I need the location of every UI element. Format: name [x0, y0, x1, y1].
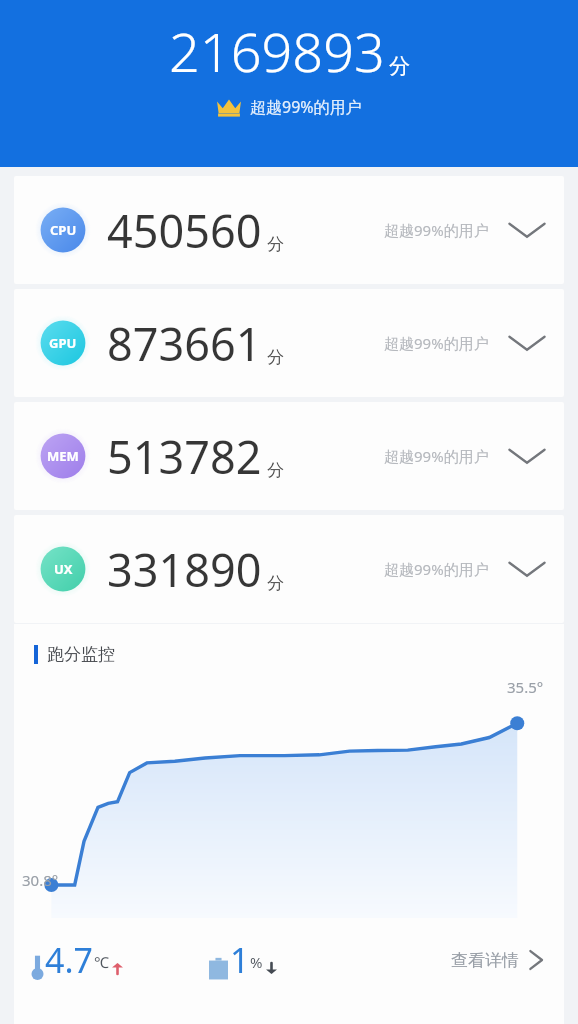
staticText: 513782 [107, 426, 262, 487]
staticText: 分 [389, 53, 410, 79]
other: Expand CPU details [507, 217, 547, 243]
button[interactable]: MEM [14, 402, 564, 510]
staticText: 分 [267, 573, 284, 594]
staticText: 2169893 [169, 14, 385, 88]
staticText: 450560 [107, 200, 262, 261]
staticText: 331890 [107, 539, 262, 600]
button[interactable]: GPU [14, 289, 564, 397]
staticText: UX [54, 560, 73, 578]
staticText: 超越99%的用户 [384, 559, 489, 579]
staticText: 4.7 [45, 937, 94, 983]
staticText: ℃ [94, 952, 109, 972]
button[interactable]: UX [14, 515, 564, 623]
other: Expand GPU details [507, 330, 547, 356]
staticText: GPU [49, 334, 77, 352]
staticText: 跑分监控 [47, 644, 115, 665]
staticText: CPU [50, 221, 77, 239]
staticText: 超越99%的用户 [384, 446, 489, 466]
staticText: 30.8° [22, 870, 59, 890]
staticText: 分 [267, 347, 284, 368]
staticText: 分 [267, 234, 284, 255]
button[interactable]: 查看详情 [445, 936, 552, 984]
staticText: % [250, 952, 263, 972]
staticText: MEM [47, 447, 79, 465]
other: Expand MEM details [507, 443, 547, 469]
staticText: 873661 [107, 313, 262, 374]
staticText: 35.5° [507, 677, 544, 697]
staticText: 超越99%的用户 [250, 96, 362, 118]
staticText: 超越99%的用户 [384, 333, 489, 353]
button[interactable]: CPU [14, 176, 564, 284]
staticText: 查看详情 [451, 950, 519, 971]
staticText: 超越99%的用户 [384, 220, 489, 240]
staticText: 分 [267, 460, 284, 481]
staticText: 1 [230, 937, 250, 983]
other: Expand UX details [507, 556, 547, 582]
